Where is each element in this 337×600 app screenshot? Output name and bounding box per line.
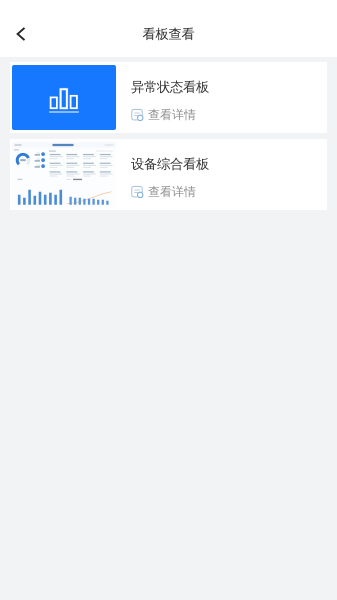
staticText: 查看详情 bbox=[148, 107, 196, 122]
button[interactable]: 设备综合看板 bbox=[10, 139, 327, 210]
staticText: 看板查看 bbox=[142, 26, 194, 42]
button[interactable]: 异常状态看板 bbox=[10, 62, 327, 133]
staticText: 设备综合看板 bbox=[131, 156, 209, 172]
staticText: 异常状态看板 bbox=[131, 79, 209, 95]
staticText: 查看详情 bbox=[148, 184, 196, 199]
button[interactable]: Back bbox=[0, 12, 42, 55]
